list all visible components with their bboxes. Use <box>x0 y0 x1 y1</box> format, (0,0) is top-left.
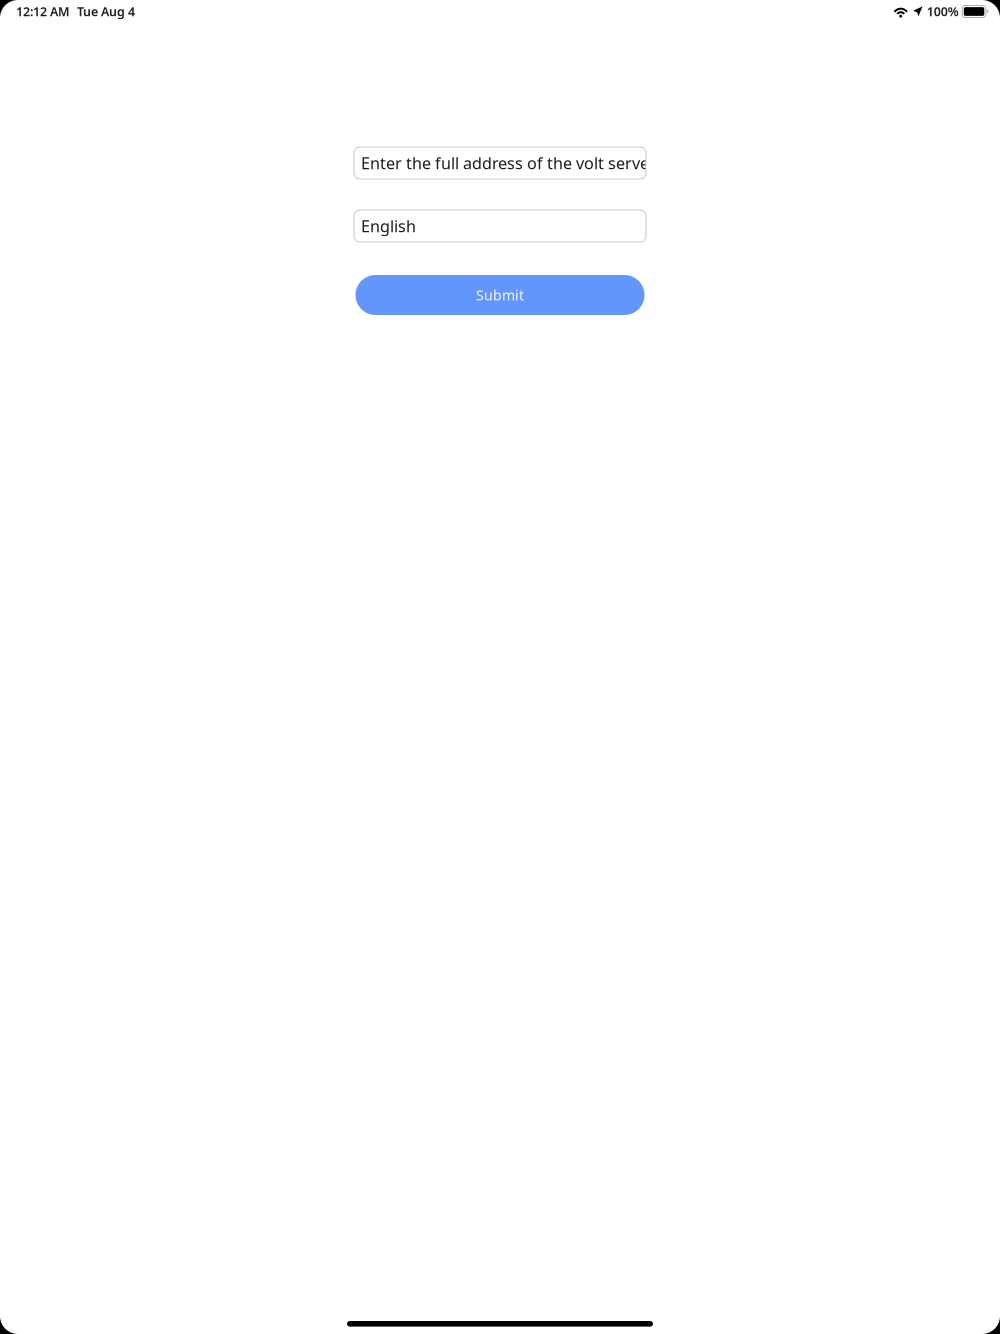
staticText: Enter the full address of the volt serve… <box>361 152 656 174</box>
staticText: Submit <box>476 286 524 304</box>
staticText: 12:12 AM <box>16 3 70 20</box>
staticText: Tue Aug 4 <box>77 3 135 20</box>
staticText: 100% <box>927 3 959 20</box>
staticText: English <box>361 215 416 237</box>
button[interactable]: Language <box>354 210 646 242</box>
button[interactable]: Submit <box>355 275 644 315</box>
button[interactable]: Server address <box>354 147 646 179</box>
